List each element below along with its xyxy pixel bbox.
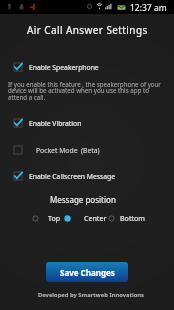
staticText: Air Call Answer Settings bbox=[27, 23, 148, 37]
button[interactable]: Top bbox=[31, 211, 61, 225]
staticText: Enable Callscreen Message bbox=[29, 172, 116, 181]
button[interactable]: Enable Callscreen Message bbox=[0, 168, 174, 184]
staticText: Enable Speakerphone bbox=[29, 63, 99, 72]
staticText: Developed by Smartweb Innovations bbox=[38, 291, 145, 299]
staticText: Center bbox=[84, 213, 107, 223]
button[interactable]: Pocket Mode (Beta) bbox=[0, 142, 174, 158]
staticText: Bottom bbox=[120, 213, 145, 223]
staticText: Enable Vibration bbox=[29, 119, 82, 128]
button[interactable]: Bottom bbox=[107, 211, 145, 225]
button[interactable]: Enable Speakerphone bbox=[0, 59, 174, 75]
staticText: Message position bbox=[50, 194, 116, 205]
button[interactable]: Enable Vibration bbox=[0, 115, 174, 131]
staticText: If you enable this feature , the speaker… bbox=[8, 80, 161, 102]
staticText: Save Changes bbox=[60, 267, 115, 278]
button[interactable]: Save Changes bbox=[46, 262, 128, 282]
staticText: Top bbox=[48, 213, 61, 223]
button[interactable]: Center bbox=[63, 211, 107, 225]
staticText: Pocket Mode (Beta) bbox=[36, 146, 100, 155]
staticText: 12:37 am bbox=[130, 2, 167, 14]
